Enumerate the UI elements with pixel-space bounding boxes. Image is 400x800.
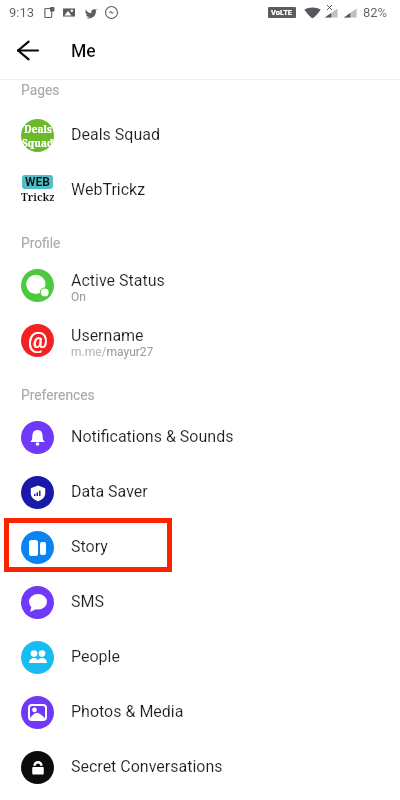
button[interactable]: Back	[4, 27, 51, 74]
staticText: Data Saver	[71, 482, 148, 501]
button[interactable]: Photos & Media	[0, 685, 400, 740]
button[interactable]: Story	[0, 520, 400, 575]
button[interactable]: People	[0, 630, 400, 685]
staticText: Username	[71, 326, 144, 345]
staticText: SMS	[71, 592, 104, 611]
staticText: Trickz	[21, 190, 54, 204]
staticText: Pages	[21, 82, 60, 98]
staticText: Secret Conversations	[71, 757, 223, 776]
staticText: Photos & Media	[71, 702, 184, 721]
button[interactable]: Deals	[0, 108, 400, 163]
staticText: VoLTE	[271, 8, 293, 17]
staticText: Profile	[21, 235, 61, 251]
staticText: On	[71, 290, 86, 304]
staticText: Deals	[24, 122, 52, 136]
button[interactable]: @	[0, 313, 400, 368]
staticText: m.me/mayur27	[71, 345, 154, 359]
button[interactable]: Secret Conversations	[0, 740, 400, 795]
staticText: Me	[71, 41, 96, 62]
staticText: WEB	[25, 175, 50, 189]
staticText: Story	[71, 537, 108, 556]
staticText: 9:13	[9, 5, 35, 20]
staticText: Squad	[22, 136, 54, 150]
button[interactable]: Data Saver	[0, 465, 400, 520]
staticText: WebTrickz	[71, 180, 146, 199]
button[interactable]: Active Status	[0, 258, 400, 313]
button[interactable]: WEB	[0, 163, 400, 218]
staticText: People	[71, 647, 120, 666]
staticText: @	[28, 328, 48, 354]
staticText: Deals Squad	[71, 125, 160, 144]
staticText: Notifications & Sounds	[71, 427, 234, 446]
staticText: Preferences	[21, 387, 95, 403]
button[interactable]: Notifications & Sounds	[0, 410, 400, 465]
staticText: Active Status	[71, 271, 165, 290]
button[interactable]: SMS	[0, 575, 400, 630]
staticText: 82%	[363, 5, 388, 20]
